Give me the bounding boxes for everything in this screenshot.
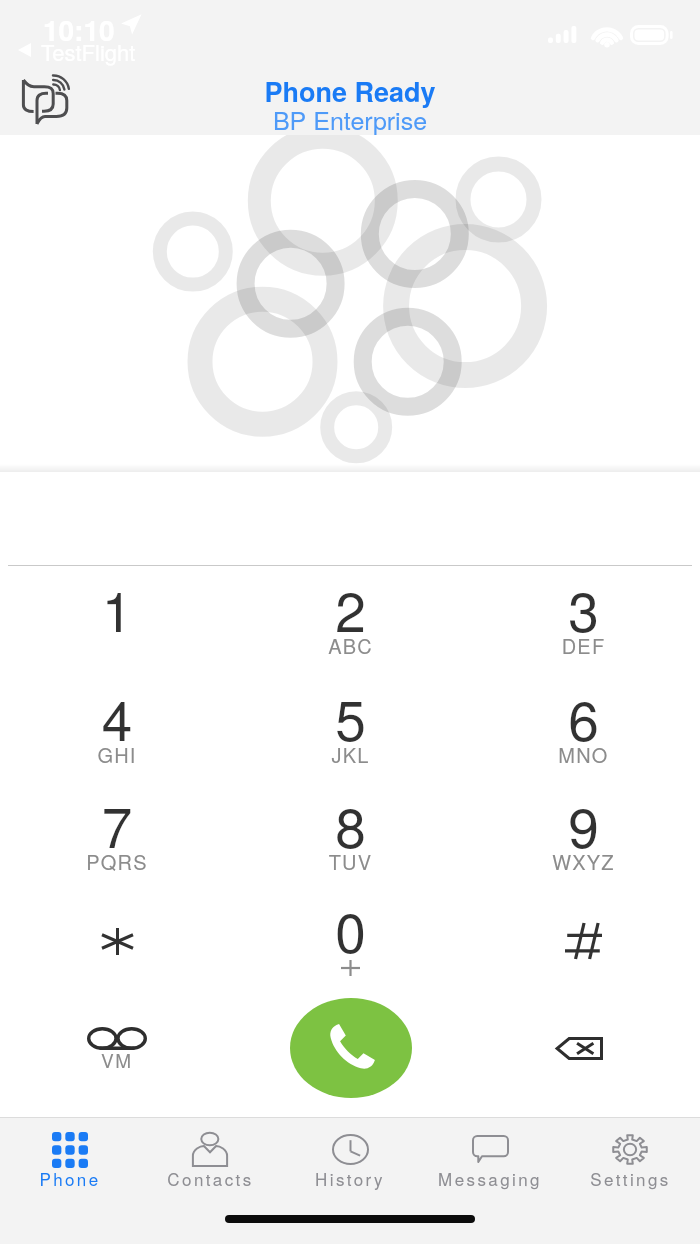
staticText: TUV <box>234 847 467 876</box>
button[interactable]: Settings <box>560 1118 700 1210</box>
button[interactable]: 2 <box>234 569 467 677</box>
button[interactable] <box>467 890 700 998</box>
staticText: DEF <box>467 631 700 660</box>
staticText: JKL <box>234 740 467 769</box>
button[interactable]: 5 <box>234 678 467 786</box>
staticText: 6 <box>467 678 700 757</box>
button[interactable]: Messaging <box>420 1118 560 1210</box>
staticText: Settings <box>590 1166 671 1190</box>
staticText: Phone Ready <box>0 72 700 111</box>
staticText: 2 <box>234 569 467 648</box>
staticText: 8 <box>234 785 467 864</box>
button[interactable]: Delete <box>467 998 700 1098</box>
staticText: 9 <box>467 785 700 864</box>
staticText: Contacts <box>167 1166 254 1190</box>
button[interactable]: Contacts <box>140 1118 280 1210</box>
staticText: 10:10 <box>43 9 115 49</box>
staticText: GHI <box>0 740 234 769</box>
staticText: VM <box>101 1046 133 1073</box>
staticText: 0 <box>234 890 467 969</box>
staticText: PQRS <box>0 847 234 876</box>
staticText: TestFlight <box>41 36 136 68</box>
button[interactable]: 4 <box>0 678 234 786</box>
staticText: History <box>315 1166 385 1190</box>
button[interactable]: 6 <box>467 678 700 786</box>
button[interactable]: 1 <box>0 569 234 677</box>
button[interactable]: Call <box>290 998 412 1098</box>
staticText: BP Enterprise <box>0 101 700 137</box>
staticText: WXYZ <box>467 847 700 876</box>
staticText: 5 <box>234 678 467 757</box>
button[interactable]: Voicemail <box>0 998 234 1098</box>
staticText: Messaging <box>438 1166 542 1190</box>
button[interactable]: History <box>280 1118 420 1210</box>
button[interactable]: 0 <box>234 890 467 998</box>
button[interactable]: Menu <box>14 72 78 130</box>
button[interactable]: Phone <box>0 1118 140 1210</box>
staticText: MNO <box>467 740 700 769</box>
button[interactable]: 9 <box>467 785 700 893</box>
staticText: 7 <box>0 785 234 864</box>
staticText: 4 <box>0 678 234 757</box>
button[interactable]: 7 <box>0 785 234 893</box>
button[interactable] <box>0 890 234 998</box>
staticText: 1 <box>0 569 234 648</box>
staticText: Phone <box>39 1166 101 1190</box>
staticText: 3 <box>467 569 700 648</box>
button[interactable]: 8 <box>234 785 467 893</box>
button[interactable]: 3 <box>467 569 700 677</box>
staticText: ABC <box>234 631 467 660</box>
